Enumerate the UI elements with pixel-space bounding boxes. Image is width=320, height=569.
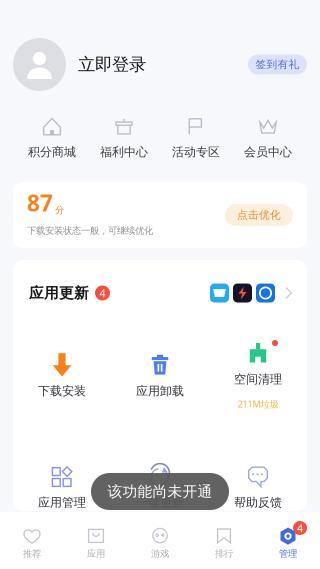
staticText: 游戏 [151, 548, 169, 559]
staticText: 管理 [279, 548, 297, 559]
staticText: 帮助反馈 [234, 495, 282, 510]
button[interactable]: 4 [256, 512, 320, 561]
staticText: 会员中心 [244, 145, 292, 159]
button[interactable]: 游戏 [128, 512, 192, 561]
staticText: 空间清理 [234, 372, 282, 387]
button[interactable]: 应用卸载 [111, 353, 209, 398]
staticText: 应用更新 [29, 284, 89, 302]
button[interactable]: 活动专区 [160, 113, 232, 162]
button[interactable]: 下载安装 [13, 353, 111, 398]
button[interactable]: 推荐 [0, 512, 64, 561]
staticText: 推荐 [23, 548, 41, 559]
button[interactable]: 福利中心 [88, 113, 160, 162]
button[interactable]: 一键更新 [111, 464, 209, 510]
staticText: 211M垃圾 [237, 398, 278, 410]
staticText: 点击优化 [237, 208, 281, 221]
button[interactable]: 点击优化 [225, 204, 293, 226]
staticText: 福利中心 [100, 145, 148, 159]
staticText: 积分商城 [28, 145, 76, 159]
button[interactable]: 签到有礼 [248, 54, 307, 74]
button[interactable]: 积分商城 [16, 113, 88, 162]
staticText: 分 [55, 204, 64, 216]
staticText: 下载安装 [38, 384, 86, 398]
staticText: 签到有礼 [255, 58, 299, 71]
staticText: 应用管理 [38, 495, 86, 510]
staticText: 4 [297, 521, 303, 535]
button[interactable]: 应用更新 [13, 260, 307, 309]
button[interactable]: 应用 [64, 512, 128, 561]
button[interactable]: 应用管理 [13, 464, 111, 510]
button[interactable]: 帮助反馈 [209, 464, 307, 510]
button[interactable]: 会员中心 [232, 113, 304, 162]
staticText: 立即登录 [78, 54, 146, 75]
staticText: 应用 [87, 548, 105, 559]
staticText: 下载安装状态一般，可继续优化 [27, 225, 153, 236]
staticText: 该功能尚未开通 [107, 482, 212, 500]
staticText: 4 [99, 286, 105, 300]
staticText: 排行 [215, 548, 233, 559]
staticText: 活动专区 [172, 145, 220, 159]
staticText: 87 [27, 188, 53, 218]
staticText: 应用卸载 [136, 384, 184, 398]
staticText: 一键更新 [136, 495, 184, 510]
button[interactable]: 排行 [192, 512, 256, 561]
button[interactable]: 空间清理 [209, 341, 307, 410]
